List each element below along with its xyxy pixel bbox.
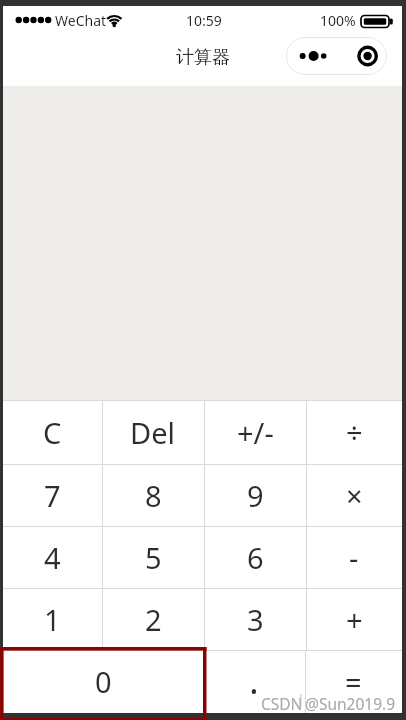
button[interactable]: 5 bbox=[102, 526, 204, 588]
button[interactable]: Del bbox=[102, 400, 204, 464]
button[interactable]: 1 bbox=[3, 588, 102, 650]
staticText: CSDN bbox=[261, 693, 303, 714]
button[interactable]: + bbox=[306, 588, 402, 650]
button[interactable]: 4 bbox=[3, 526, 102, 588]
button[interactable]: - bbox=[306, 526, 402, 588]
staticText: 2 bbox=[145, 600, 162, 639]
staticText: 9 bbox=[247, 476, 264, 515]
button[interactable]: +/- bbox=[204, 400, 306, 464]
staticText: 6 bbox=[247, 538, 264, 577]
button[interactable]: ÷ bbox=[306, 400, 402, 464]
staticText: 10:59 bbox=[186, 11, 222, 30]
button[interactable]: C bbox=[3, 400, 102, 464]
staticText: 3 bbox=[247, 600, 264, 639]
staticText: 5 bbox=[145, 538, 162, 577]
staticText: C bbox=[43, 413, 62, 452]
staticText: 7 bbox=[44, 476, 61, 515]
staticText: 100% bbox=[320, 11, 356, 30]
button[interactable]: = bbox=[305, 650, 402, 713]
staticText: 0 bbox=[95, 662, 112, 701]
staticText: = bbox=[345, 662, 362, 701]
button[interactable]: . bbox=[203, 650, 305, 713]
staticText: × bbox=[346, 476, 363, 515]
staticText: - bbox=[349, 538, 359, 577]
button[interactable]: 2 bbox=[102, 588, 204, 650]
staticText: +/- bbox=[237, 413, 274, 452]
staticText: + bbox=[346, 600, 363, 639]
staticText: 计算器 bbox=[176, 46, 230, 69]
staticText: @Sun2019.9 bbox=[305, 693, 396, 714]
button[interactable]: 7 bbox=[3, 464, 102, 526]
staticText: WeChat bbox=[55, 11, 107, 30]
button[interactable]: 8 bbox=[102, 464, 204, 526]
button[interactable]: 6 bbox=[204, 526, 306, 588]
button[interactable]: × bbox=[306, 464, 402, 526]
staticText: . bbox=[250, 662, 258, 701]
button[interactable]: 0 bbox=[3, 650, 203, 713]
button[interactable] bbox=[286, 37, 387, 75]
staticText: ÷ bbox=[346, 413, 363, 452]
button[interactable]: 9 bbox=[204, 464, 306, 526]
staticText: Del bbox=[130, 413, 176, 452]
staticText: 8 bbox=[145, 476, 162, 515]
staticText: 1 bbox=[44, 600, 61, 639]
staticText: 4 bbox=[44, 538, 61, 577]
button[interactable]: 3 bbox=[204, 588, 306, 650]
